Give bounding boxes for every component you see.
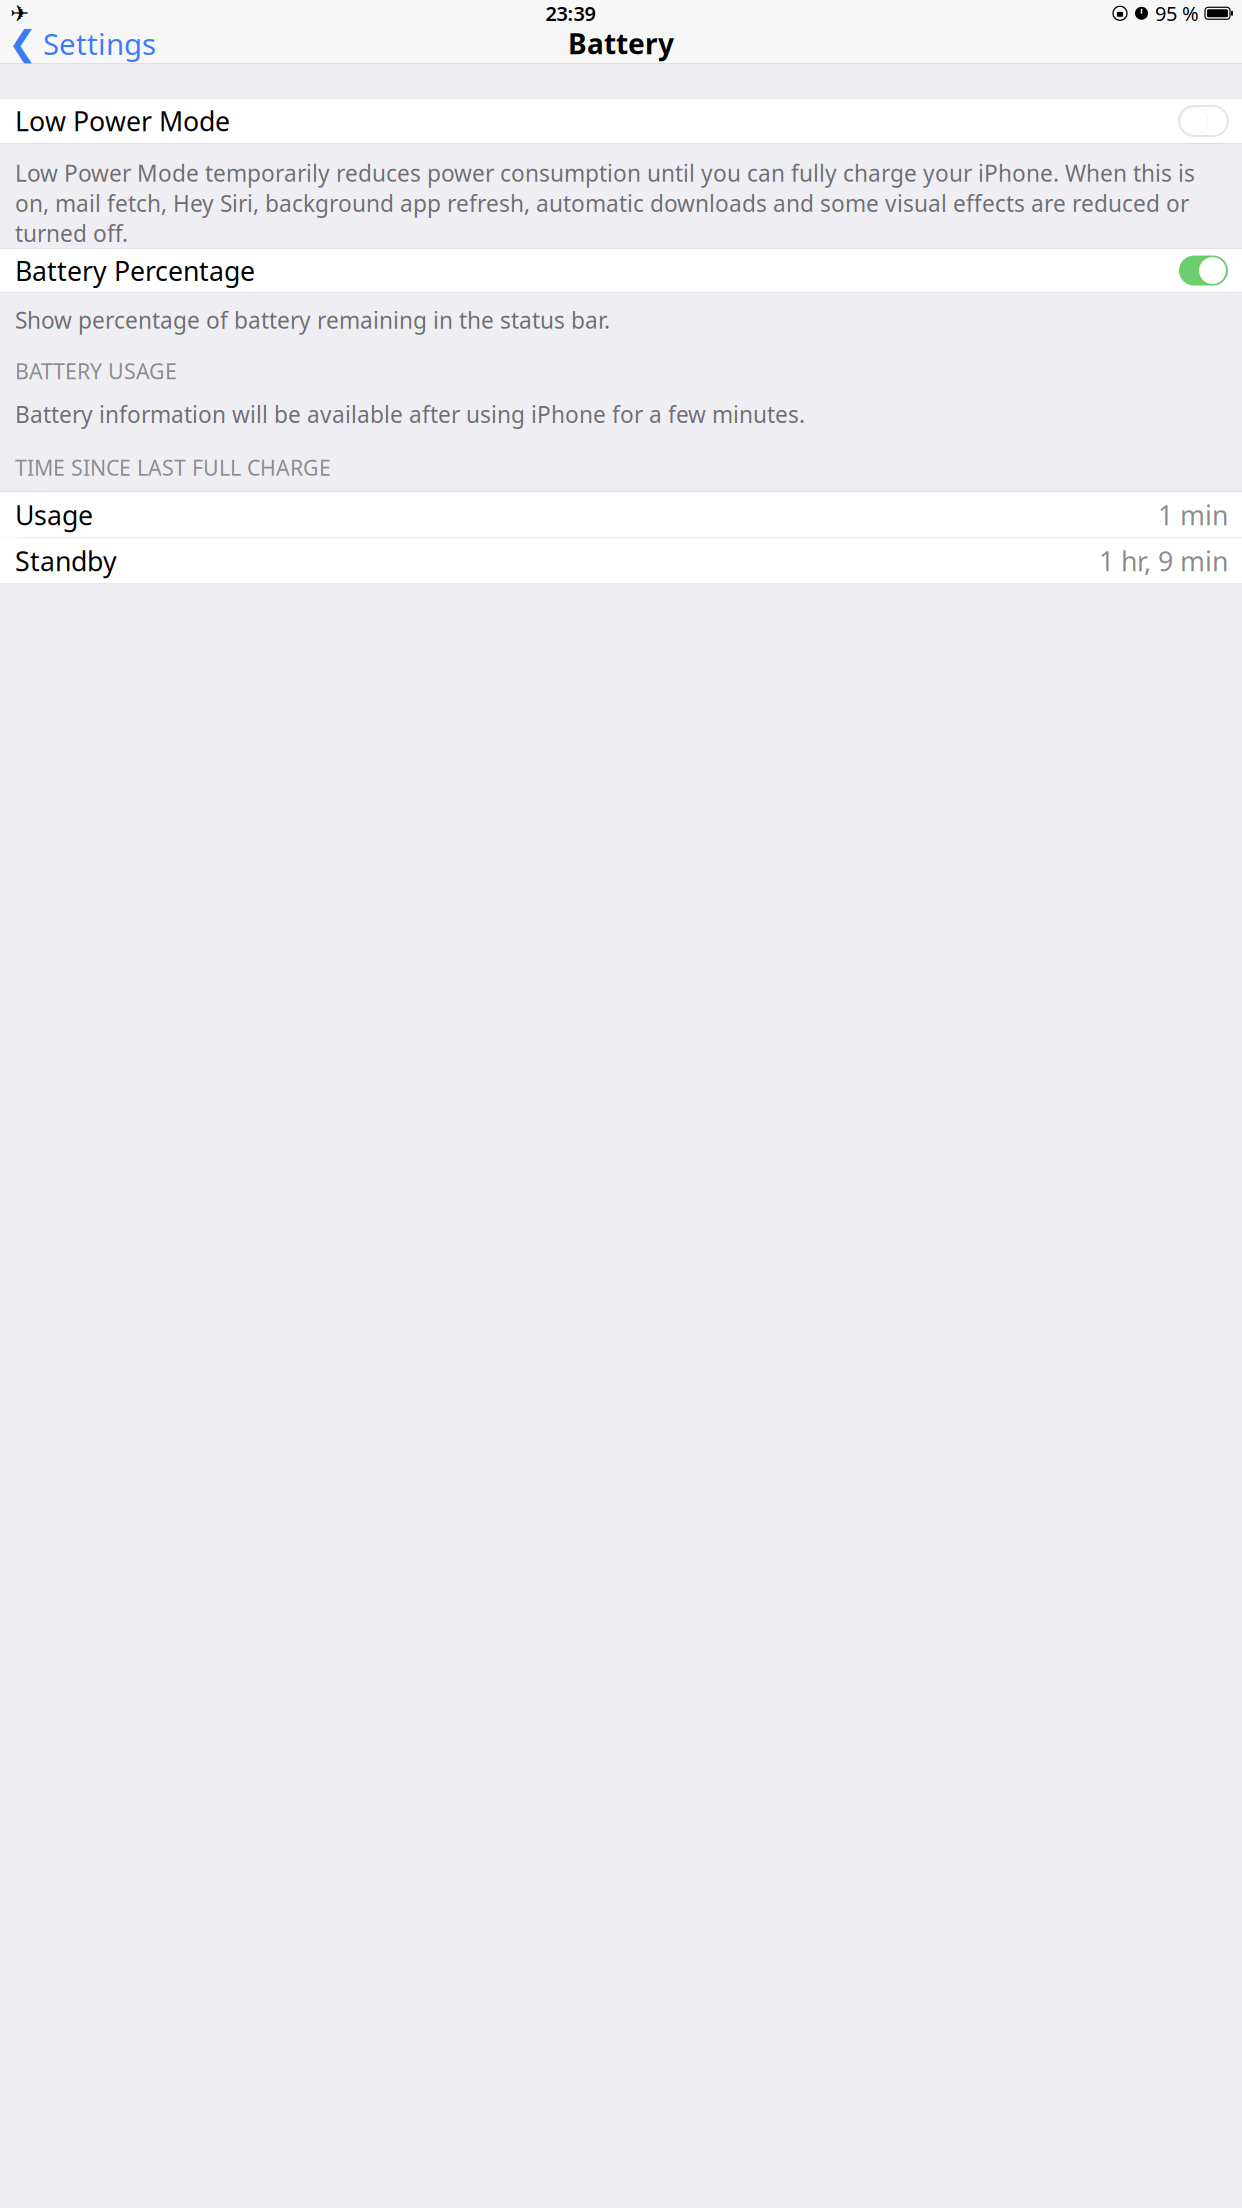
staticText: ✈ [10, 0, 29, 26]
staticText: Battery Percentage [15, 253, 255, 288]
staticText: Usage [15, 497, 93, 533]
button[interactable]: Usage [0, 492, 1242, 538]
staticText: Show percentage of battery remaining in … [15, 305, 610, 335]
staticText: BATTERY USAGE [15, 357, 177, 385]
button[interactable]: Low Power Mode [0, 98, 1242, 143]
staticText: 23:39 [545, 0, 595, 27]
staticText: Standby [15, 543, 117, 579]
staticText: Battery [568, 25, 674, 62]
staticText: ❮ [8, 24, 37, 63]
button[interactable]: Standby [0, 538, 1242, 584]
button[interactable]: ❮ [0, 18, 156, 69]
staticText: 95 % [1155, 0, 1199, 27]
staticText: 1 min [1158, 497, 1228, 533]
staticText: Low Power Mode temporarily reduces power… [15, 158, 1195, 248]
staticText: 1 hr, 9 min [1099, 543, 1228, 579]
staticText: Settings [43, 24, 156, 63]
staticText: TIME SINCE LAST FULL CHARGE [15, 453, 331, 482]
staticText: Low Power Mode [15, 103, 230, 139]
button[interactable]: Battery Percentage [0, 249, 1242, 292]
staticText: Battery information will be available af… [15, 399, 805, 429]
